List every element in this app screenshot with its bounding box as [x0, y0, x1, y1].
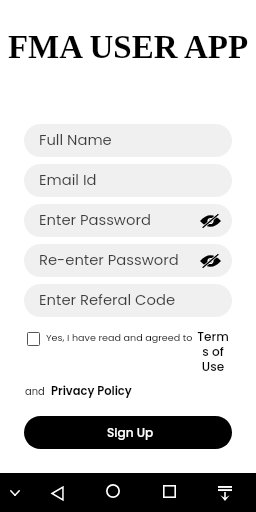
button[interactable]: Collapse [0, 477, 31, 509]
button[interactable]: Recent apps [153, 475, 185, 507]
button[interactable]: Email Id [24, 164, 232, 197]
staticText: Yes, I have read and agreed to [46, 331, 193, 344]
button[interactable]: Privacy Policy [51, 383, 132, 399]
staticText: and [25, 385, 45, 399]
button[interactable]: Terms of Use [196, 328, 230, 375]
staticText: Sign Up [107, 424, 154, 441]
button[interactable]: Toggle password visibility [198, 209, 222, 233]
staticText: Email Id [39, 170, 97, 191]
button[interactable]: Hide keyboard [209, 477, 241, 509]
button[interactable]: Enter Password [24, 204, 232, 237]
staticText: Enter Referal Code [39, 290, 176, 311]
button[interactable]: Toggle password visibility [198, 249, 222, 273]
button[interactable]: Re-enter Password [24, 244, 232, 277]
staticText: Enter Password [39, 210, 151, 231]
button[interactable]: Full Name [24, 124, 232, 157]
button[interactable]: Agree to terms and conditions checkbox [27, 332, 40, 346]
button[interactable]: Home [97, 475, 129, 507]
staticText: FMA USER APP [0, 29, 256, 66]
button[interactable]: Enter Referal Code [24, 284, 232, 317]
staticText: Re-enter Password [39, 250, 179, 271]
button[interactable]: Sign Up [24, 416, 232, 449]
button[interactable]: Back [41, 477, 73, 509]
staticText: Full Name [39, 130, 112, 151]
